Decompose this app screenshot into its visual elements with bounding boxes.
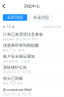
- button[interactable]: 优惠券即将到期提醒: [0, 42, 64, 53]
- staticText: 未读消息: [33, 15, 49, 20]
- staticText: 系统维护公告: [3, 65, 27, 70]
- staticText: 优惠券即将到期提醒: [3, 43, 39, 48]
- staticText: 积分已到账: [3, 76, 23, 81]
- button[interactable]: Back: [0, 0, 8, 12]
- staticText: 物流单号 SF1234567890: [3, 37, 38, 41]
- staticText: Account verified: [3, 87, 31, 92]
- staticText: 剩余 2 张 · 昨天: [3, 48, 25, 52]
- staticText: 2024-05-11 02:00: [3, 70, 31, 74]
- staticText: 新设备登录 · 3 天前: [3, 59, 30, 63]
- staticText: 消息中心: [24, 4, 40, 9]
- button[interactable]: 积分已到账: [0, 75, 64, 86]
- button[interactable]: 订单已发货请注意查收: [0, 31, 64, 42]
- button[interactable]: 系统维护公告: [0, 64, 64, 75]
- button[interactable]: 全部标记已读: [43, 25, 61, 28]
- staticText: 获得 320 积分: [3, 81, 23, 85]
- staticText: 2024-05-02 09:18: [3, 93, 31, 96]
- button[interactable]: 未读消息: [29, 14, 53, 21]
- button[interactable]: Account verified: [0, 86, 64, 97]
- button[interactable]: 全部消息: [3, 14, 27, 21]
- staticText: 全部标记已读: [43, 25, 61, 28]
- staticText: 全部消息: [7, 15, 23, 20]
- staticText: 订单已发货请注意查收: [3, 32, 43, 37]
- staticText: 账户安全验证通知: [3, 54, 35, 59]
- button[interactable]: 账户安全验证通知: [0, 53, 64, 64]
- staticText: 共 12 条: [3, 25, 15, 28]
